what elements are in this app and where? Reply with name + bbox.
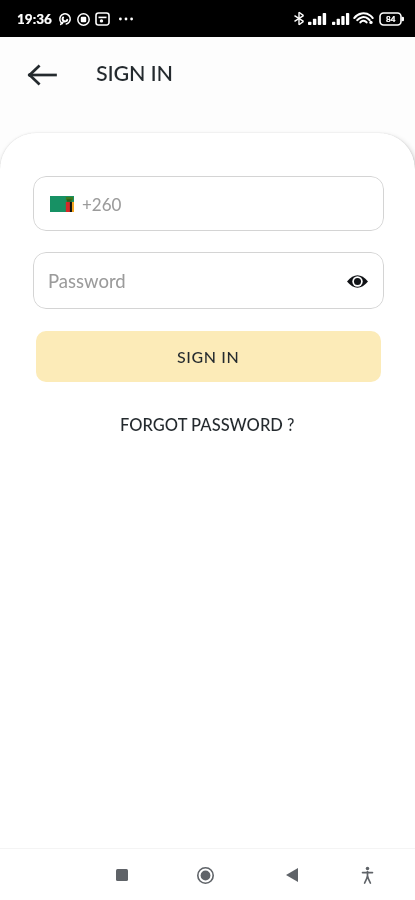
button[interactable]: Home	[185, 855, 225, 895]
staticText: 19:36	[17, 11, 52, 27]
staticText: SIGN IN	[177, 347, 240, 366]
button[interactable]: Show password	[341, 265, 373, 297]
staticText: 84	[386, 14, 396, 24]
button[interactable]: +260	[33, 176, 384, 231]
button[interactable]: Password	[33, 252, 384, 309]
button[interactable]: Back	[21, 54, 63, 96]
staticText: SIGN IN	[96, 60, 173, 86]
staticText: +260	[82, 194, 122, 214]
button[interactable]: FORGOT PASSWORD ?	[112, 411, 303, 439]
button[interactable]: Accessibility	[347, 855, 387, 895]
button[interactable]: Recents	[102, 855, 142, 895]
button[interactable]: Back	[272, 855, 312, 895]
button[interactable]: SIGN IN	[36, 331, 381, 382]
staticText: Password	[48, 270, 126, 292]
staticText: FORGOT PASSWORD ?	[120, 415, 295, 435]
